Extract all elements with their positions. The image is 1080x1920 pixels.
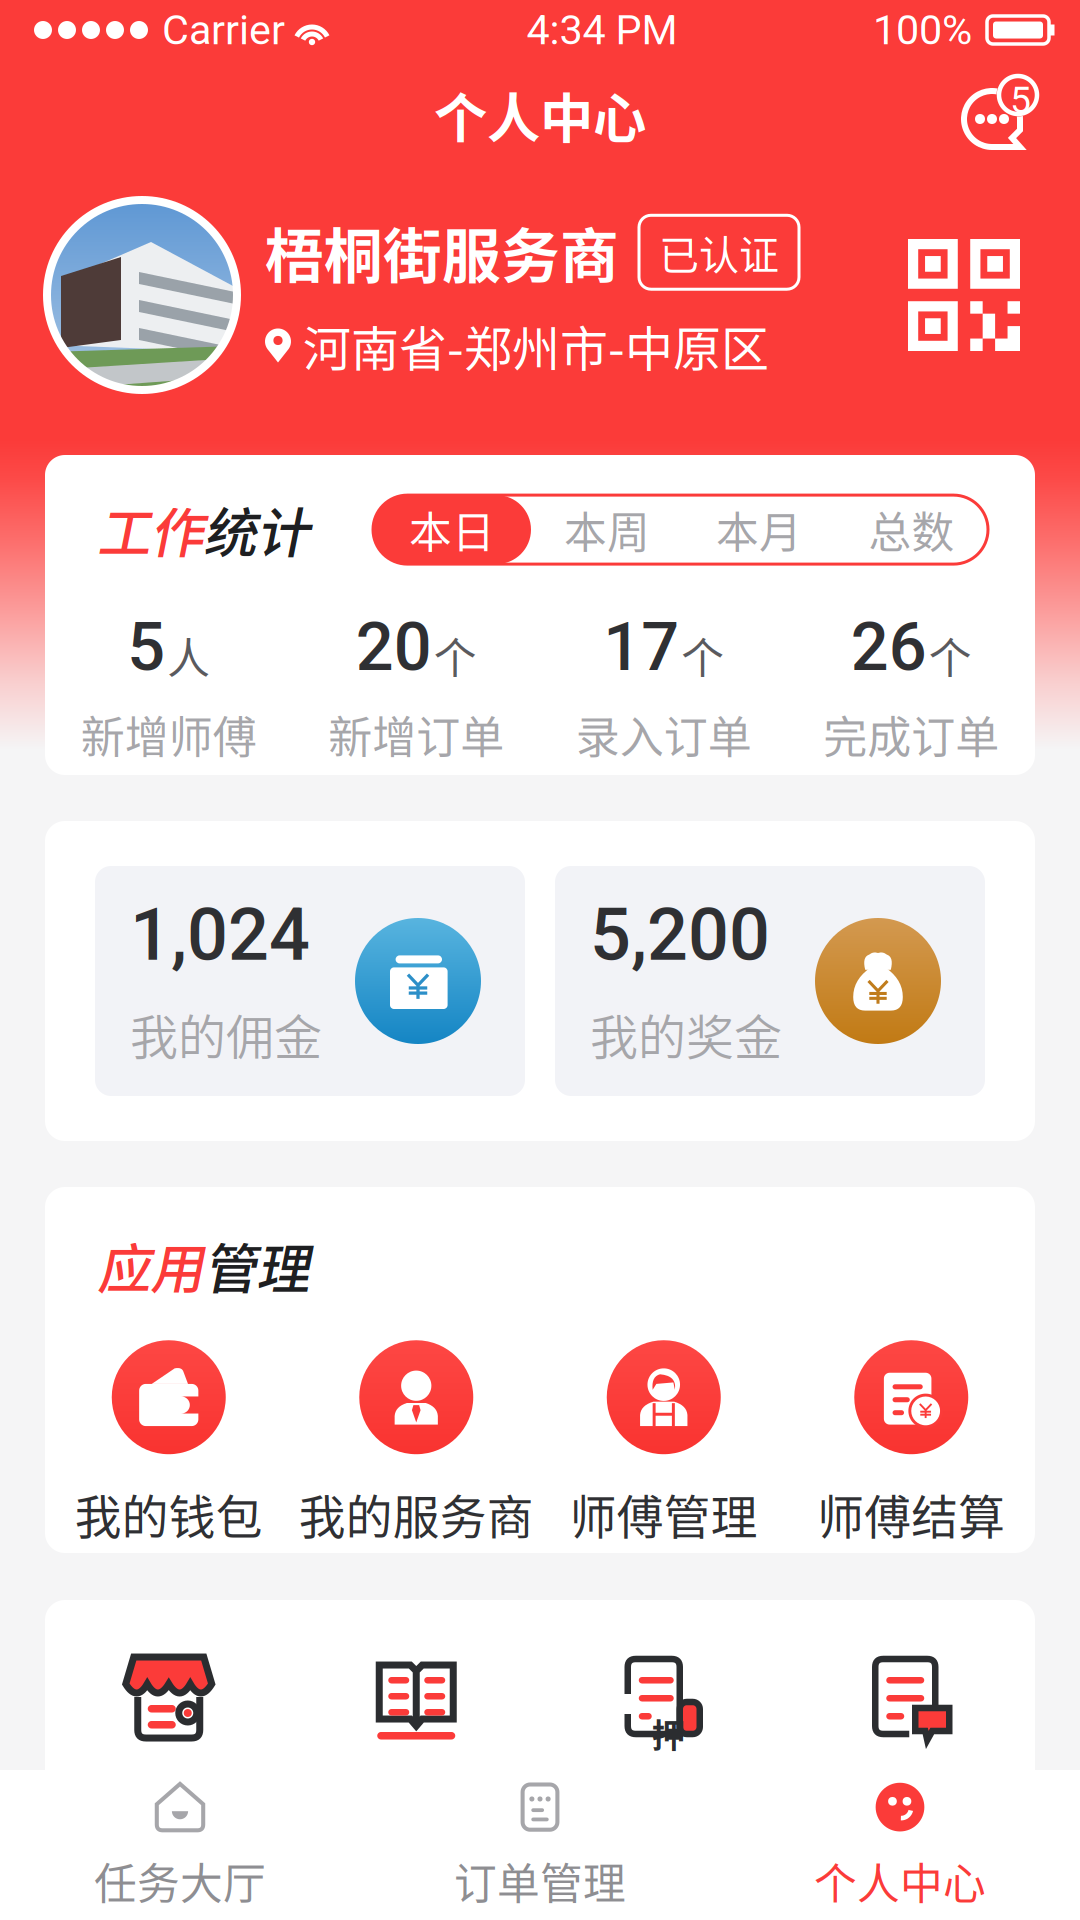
staticText: 新增师傅	[81, 702, 257, 766]
staticText: 1,024	[130, 893, 310, 977]
button[interactable]: 任务大厅	[0, 1770, 360, 1920]
staticText: 26	[851, 608, 927, 686]
staticText: Carrier	[152, 6, 285, 54]
staticText: 5,200	[590, 893, 770, 977]
staticText: 平台介绍	[821, 1766, 1001, 1832]
button[interactable]: 1,024	[95, 866, 525, 1096]
staticText: 我的佣金	[130, 999, 322, 1069]
staticText: 我的钱包	[75, 1480, 263, 1548]
staticText: 20	[356, 608, 432, 686]
button[interactable]: 我的钱包	[45, 1340, 292, 1548]
staticText: 我的奖金	[590, 999, 782, 1069]
staticText: 个人中心	[814, 1850, 986, 1912]
staticText: 管理	[203, 1227, 309, 1304]
staticText: 17	[603, 608, 679, 686]
button[interactable]: 我的资料	[45, 1646, 292, 1832]
staticText: 5	[127, 608, 165, 686]
staticText: 本日	[409, 499, 495, 560]
button[interactable]: 5,200	[555, 866, 985, 1096]
staticText: 个	[434, 625, 477, 686]
staticText: 本月	[716, 499, 802, 560]
staticText: 人	[167, 625, 210, 686]
button[interactable]: 学习中心	[292, 1646, 540, 1832]
staticText: 订单管理	[454, 1850, 626, 1912]
staticText: 100%	[873, 6, 972, 54]
staticText: 我的资料	[79, 1766, 259, 1832]
staticText: 4:34 PM	[526, 6, 677, 54]
button[interactable]: 订单管理	[360, 1770, 720, 1920]
staticText: 任务大厅	[94, 1850, 266, 1912]
staticText: 师傅结算	[817, 1480, 1005, 1548]
staticText: 本周	[564, 499, 650, 560]
staticText: 我的服务商	[299, 1480, 534, 1548]
staticText: 押	[652, 1709, 685, 1757]
staticText: 河南省-郑州市-中原区	[303, 311, 769, 380]
staticText: 完成订单	[823, 702, 999, 766]
staticText: 应用	[97, 1227, 203, 1304]
button[interactable]: 平台介绍	[787, 1646, 1035, 1832]
button[interactable]: 我的二维码	[908, 239, 1020, 351]
staticText: 个	[929, 625, 972, 686]
staticText: 录入订单	[576, 702, 752, 766]
staticText: 新增订单	[328, 702, 504, 766]
staticText: 梧桐街服务商	[265, 210, 619, 295]
button[interactable]: 个人中心	[720, 1770, 1080, 1920]
staticText: 已认证	[659, 223, 779, 281]
staticText: 师傅管理	[570, 1480, 758, 1548]
button[interactable]: 师傅结算	[787, 1340, 1035, 1548]
button[interactable]: 我的服务商	[292, 1340, 540, 1548]
button[interactable]: 消息	[952, 69, 1044, 161]
staticText: 总数	[868, 499, 954, 560]
button[interactable]: 师傅管理	[540, 1340, 787, 1548]
staticText: 5	[1010, 78, 1031, 122]
button[interactable]: 押	[540, 1646, 787, 1832]
staticText: 统计	[203, 491, 309, 568]
staticText: 工作	[97, 491, 203, 568]
staticText: 个人中心	[434, 76, 646, 154]
staticText: 个	[681, 625, 724, 686]
